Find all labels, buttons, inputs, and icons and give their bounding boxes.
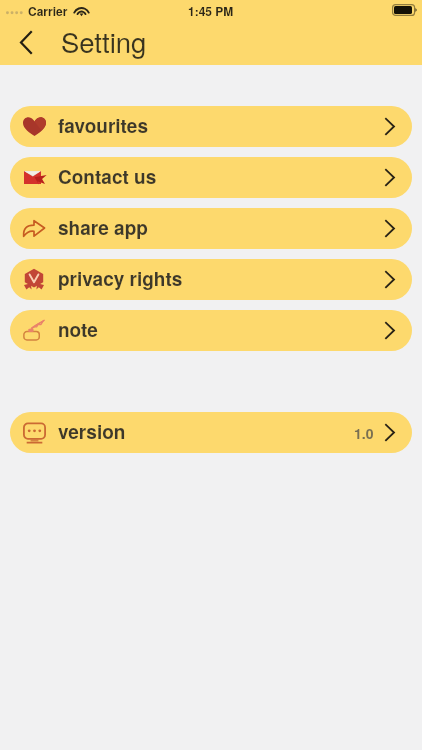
- staticText: note: [58, 316, 98, 343]
- staticText: version: [58, 418, 126, 445]
- staticText: Carrier: [28, 2, 68, 19]
- staticText: Setting: [61, 21, 147, 60]
- button[interactable]: Back: [0, 20, 52, 65]
- staticText: favourites: [58, 112, 148, 139]
- staticText: 1:45 PM: [188, 2, 234, 19]
- button[interactable]: favourites: [10, 106, 412, 147]
- staticText: privacy rights: [58, 265, 183, 292]
- staticText: share app: [58, 214, 148, 241]
- button[interactable]: privacy rights: [10, 259, 412, 300]
- staticText: Contact us: [58, 163, 157, 190]
- button[interactable]: Contact us: [10, 157, 412, 198]
- button[interactable]: version: [10, 412, 412, 453]
- staticText: 1.0: [354, 423, 374, 443]
- button[interactable]: note: [10, 310, 412, 351]
- button[interactable]: share app: [10, 208, 412, 249]
